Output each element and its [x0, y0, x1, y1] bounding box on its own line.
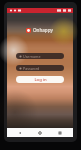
staticText: Onhappy — [33, 27, 53, 33]
button[interactable]: Home — [33, 128, 47, 137]
button[interactable]: Log in — [16, 76, 64, 83]
button[interactable]: Password — [16, 65, 64, 71]
staticText: Log in — [34, 77, 47, 83]
staticText: Password — [23, 66, 40, 71]
button[interactable]: Recents — [53, 128, 67, 137]
staticText: Username — [23, 54, 41, 59]
button[interactable]: Username — [16, 53, 64, 59]
button[interactable]: Back — [13, 128, 27, 137]
